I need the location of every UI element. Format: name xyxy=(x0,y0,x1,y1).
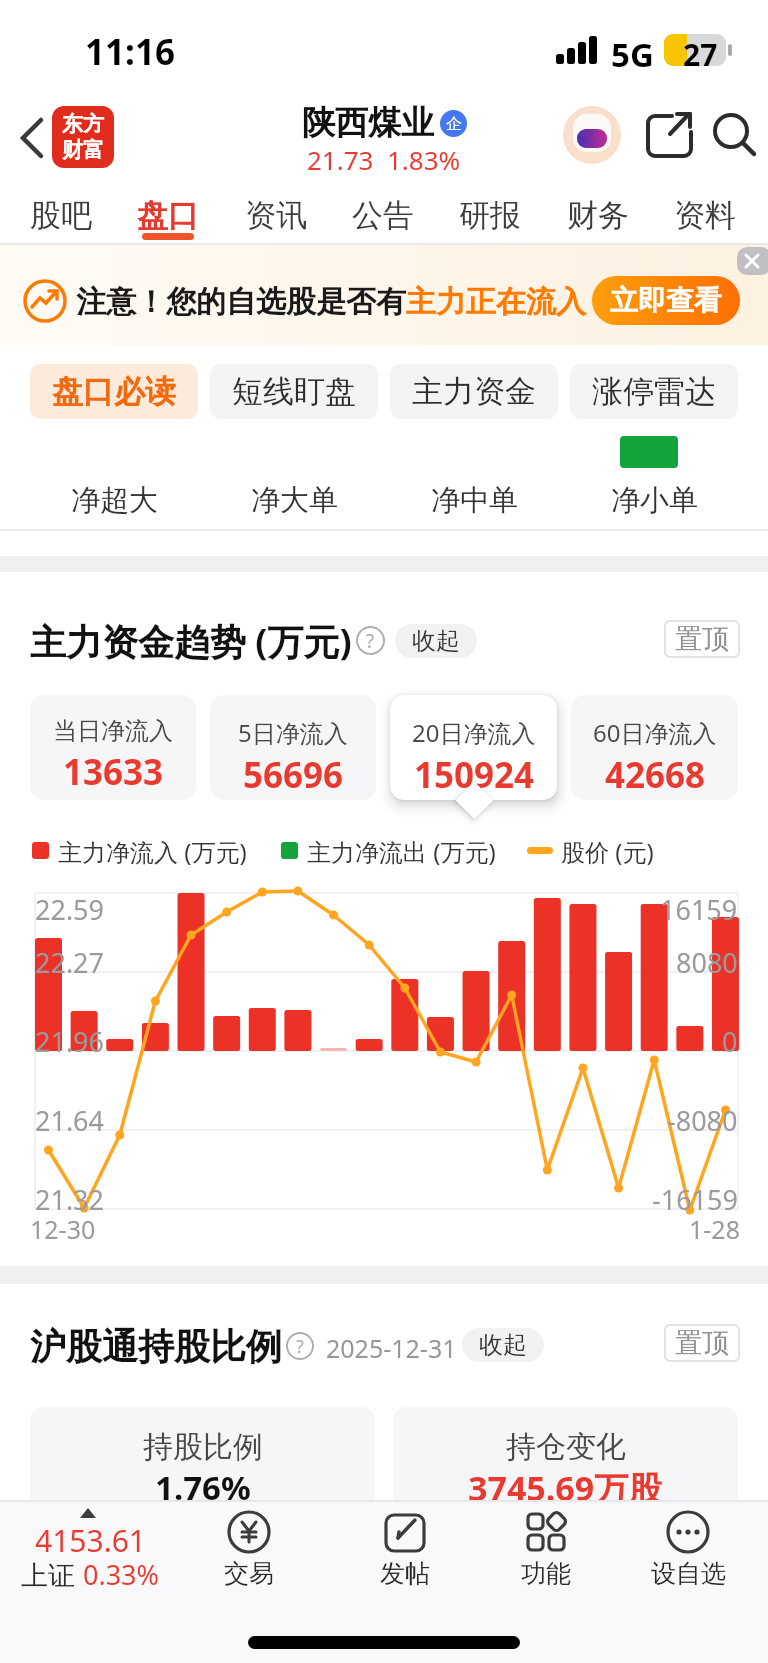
staticText: 注意！您的自选股是否有 xyxy=(76,283,406,321)
staticText: 21.73 1.83% xyxy=(307,142,461,177)
staticText: 盘口必读 xyxy=(52,372,176,411)
staticText: 功能 xyxy=(521,1558,571,1589)
staticText: 42668 xyxy=(605,751,706,799)
button[interactable]: 公告 xyxy=(352,196,414,235)
staticText: 8080 xyxy=(676,944,738,981)
staticText: 财富 xyxy=(62,137,104,163)
button[interactable]: 财务 xyxy=(567,196,629,235)
staticText: -16159 xyxy=(652,1181,738,1218)
button[interactable]: 5日净流入 xyxy=(210,695,376,800)
button[interactable]: 功能 xyxy=(496,1502,596,1602)
button[interactable]: 收起 xyxy=(462,1328,544,1362)
button[interactable]: 4153.61 xyxy=(0,1502,180,1602)
staticText: 持股比例 xyxy=(143,1428,263,1466)
button[interactable] xyxy=(712,112,758,158)
staticText: 陕西煤业 xyxy=(302,102,434,144)
staticText: 22.59 xyxy=(35,891,105,928)
staticText: 资料 xyxy=(674,196,736,235)
staticText: 净小单 xyxy=(611,482,698,519)
staticText: 短线盯盘 xyxy=(232,372,356,411)
staticText: 0.33% xyxy=(83,1556,160,1593)
staticText: 设自选 xyxy=(651,1558,726,1589)
staticText: ? xyxy=(296,1334,304,1359)
staticText: 收起 xyxy=(479,1330,527,1360)
staticText: 置顶 xyxy=(675,622,729,656)
staticText: 60日净流入 xyxy=(593,716,717,749)
button[interactable] xyxy=(646,111,692,157)
button[interactable]: 交易 xyxy=(199,1502,299,1602)
button[interactable]: 20日净流入 xyxy=(390,695,557,800)
button[interactable] xyxy=(737,247,768,275)
staticText: 主力资金趋势 (万元) xyxy=(30,617,352,666)
button[interactable]: 涨停雷达 xyxy=(570,364,738,419)
button[interactable]: 收起 xyxy=(395,624,477,658)
staticText: 20日净流入 xyxy=(412,716,536,749)
staticText: 当日净流入 xyxy=(53,716,173,746)
staticText: 2025-12-31 xyxy=(326,1331,457,1365)
staticText: 27 xyxy=(683,34,718,75)
staticText: 0 xyxy=(722,1023,738,1060)
staticText: 研报 xyxy=(459,196,521,235)
staticText: 主力资金 xyxy=(412,372,536,411)
button[interactable]: 置顶 xyxy=(664,1324,740,1362)
staticText: 13633 xyxy=(63,748,164,796)
button[interactable]: 持仓变化 xyxy=(393,1407,738,1527)
staticText: 1.76% xyxy=(155,1465,251,1510)
staticText: 主力净流出 (万元) xyxy=(307,835,496,868)
staticText: 3745.69万股 xyxy=(468,1465,663,1511)
button[interactable] xyxy=(563,106,621,164)
button[interactable]: 设自选 xyxy=(638,1502,738,1602)
button[interactable]: 60日净流入 xyxy=(571,695,738,800)
staticText: 置顶 xyxy=(675,1326,729,1360)
staticText: 21.64 xyxy=(35,1102,105,1139)
staticText: 股吧 xyxy=(30,196,92,235)
staticText: 12-30 xyxy=(30,1212,96,1246)
staticText: 22.27 xyxy=(35,944,105,981)
staticText: 企 xyxy=(446,114,462,134)
button[interactable]: 盘口 xyxy=(137,196,199,235)
staticText: 4153.61 xyxy=(35,1520,146,1561)
staticText: 5日净流入 xyxy=(238,716,348,749)
staticText: 持仓变化 xyxy=(506,1428,626,1466)
staticText: 16159 xyxy=(660,891,738,928)
staticText: 净超大 xyxy=(71,482,158,519)
staticText: 5G xyxy=(611,32,654,77)
staticText: 上证 xyxy=(21,1556,83,1593)
button[interactable]: 资料 xyxy=(674,196,736,235)
staticText: 资讯 xyxy=(245,196,307,235)
staticText: 发帖 xyxy=(380,1558,430,1589)
button[interactable]: 主力资金 xyxy=(390,364,558,419)
staticText: 交易 xyxy=(224,1558,274,1589)
button[interactable]: 当日净流入 xyxy=(30,695,196,800)
staticText: 沪股通持股比例 xyxy=(30,1324,282,1369)
button[interactable]: 注意！您的自选股是否有 xyxy=(0,245,768,345)
button[interactable]: 短线盯盘 xyxy=(210,364,378,419)
staticText: 盘口 xyxy=(137,196,199,235)
staticText: 涨停雷达 xyxy=(592,372,716,411)
staticText: 立即查看 xyxy=(610,283,722,318)
button[interactable]: 盘口必读 xyxy=(30,364,198,419)
staticText: 21.96 xyxy=(35,1023,105,1060)
button[interactable]: 东方 xyxy=(52,106,114,168)
staticText: 净中单 xyxy=(431,482,518,519)
staticText: 1-28 xyxy=(689,1212,740,1246)
staticText: 56696 xyxy=(243,751,344,799)
button[interactable]: 股吧 xyxy=(30,196,92,235)
staticText: 东方 xyxy=(62,111,104,137)
staticText: 公告 xyxy=(352,196,414,235)
staticText: 主力正在流入 xyxy=(406,283,586,321)
staticText: -8080 xyxy=(667,1102,738,1139)
staticText: 11:16 xyxy=(85,28,175,76)
staticText: 21.32 xyxy=(35,1181,105,1218)
staticText: 净大单 xyxy=(251,482,338,519)
staticText: 主力净流入 (万元) xyxy=(58,835,247,868)
staticText: 收起 xyxy=(412,626,460,656)
button[interactable] xyxy=(18,117,46,159)
button[interactable]: 置顶 xyxy=(664,620,740,658)
staticText: 150924 xyxy=(414,751,535,799)
button[interactable]: 发帖 xyxy=(355,1502,455,1602)
button[interactable]: 持股比例 xyxy=(30,1407,375,1527)
button[interactable]: 资讯 xyxy=(245,196,307,235)
button[interactable]: 立即查看 xyxy=(592,276,740,325)
button[interactable]: 研报 xyxy=(459,196,521,235)
